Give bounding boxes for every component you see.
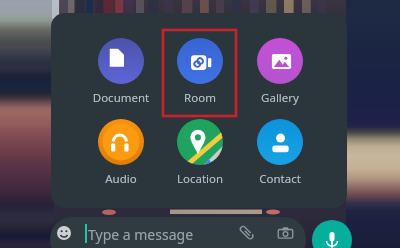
button[interactable]: Audio [78,115,164,191]
staticText: Gallery [237,90,323,106]
staticText: Audio [78,171,164,187]
button[interactable]: Gallery [237,34,323,110]
other: Emoji [57,226,71,240]
button[interactable]: Voice message [312,220,352,248]
button[interactable]: Document [78,34,164,110]
staticText: Contact [237,171,323,187]
button[interactable]: Contact [237,115,323,191]
staticText: Room [157,90,243,106]
other: Attach file [238,224,257,243]
button[interactable]: Emoji [50,217,306,248]
other: Camera [276,224,295,243]
button[interactable]: Room [157,34,243,110]
staticText: Document [78,90,164,106]
staticText: Type a message [88,225,194,244]
staticText: Location [157,171,243,187]
button[interactable]: Location [157,115,243,191]
